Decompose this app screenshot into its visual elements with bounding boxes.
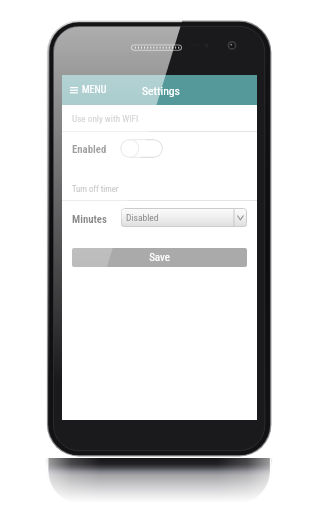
button[interactable]: MENU (68, 80, 109, 100)
button[interactable]: Save (72, 248, 247, 267)
staticText: MENU (82, 84, 107, 96)
staticText: Enabled (72, 143, 107, 156)
staticText: Settings (142, 84, 180, 98)
button[interactable]: Enabled switch, off (120, 139, 163, 158)
staticText: Save (149, 251, 170, 264)
staticText: Disabled (126, 212, 159, 223)
staticText: Use only with WIFI (72, 113, 139, 124)
button[interactable]: Disabled (121, 208, 247, 227)
staticText: Minutes (72, 213, 107, 226)
staticText: Turn off timer (72, 184, 119, 194)
